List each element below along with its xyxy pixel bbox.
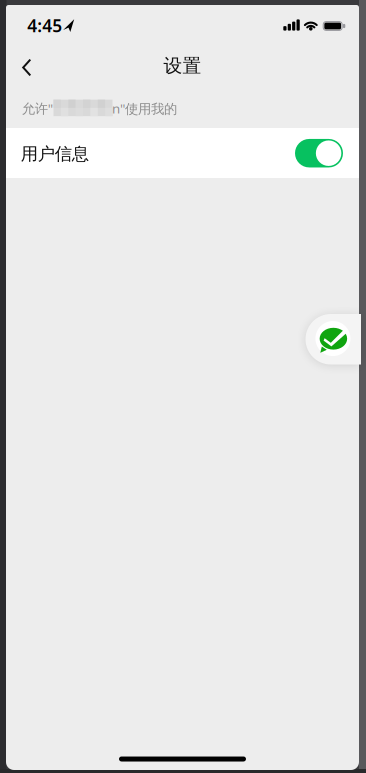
button[interactable]: 用户信息 (295, 139, 343, 167)
staticText: 允许" (22, 99, 53, 117)
staticText: 用户信息 (21, 143, 89, 165)
button[interactable]: Back (7, 47, 47, 87)
staticText: 4:45 (27, 14, 62, 37)
button[interactable]: 微信支付 (305, 314, 361, 364)
staticText: n"使用我的 (112, 99, 177, 117)
staticText: 设置 (163, 54, 201, 77)
